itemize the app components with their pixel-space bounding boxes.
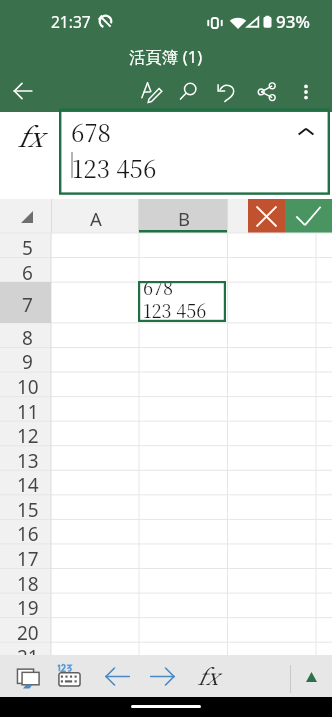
button[interactable]: A <box>52 199 138 233</box>
staticText: fx <box>197 660 218 692</box>
button[interactable]: Next cell <box>144 658 180 694</box>
button[interactable]: 18 <box>0 569 51 594</box>
staticText: B <box>178 206 191 231</box>
staticText: 15 <box>17 497 39 522</box>
button[interactable]: 5 <box>0 233 51 258</box>
button[interactable]: 7 <box>0 282 51 323</box>
staticText: 17 <box>17 546 39 571</box>
staticText: 7 <box>22 292 33 318</box>
button[interactable]: 16 <box>0 519 51 544</box>
button[interactable]: Back <box>3 71 43 110</box>
button[interactable]: Select all <box>0 199 51 233</box>
button[interactable]: 12 <box>0 421 51 446</box>
staticText: 18 <box>17 571 39 596</box>
button[interactable]: Sheets <box>10 658 46 694</box>
button[interactable]: Undo <box>206 72 246 111</box>
staticText: 9 <box>22 349 33 374</box>
button[interactable]: More options <box>286 72 326 111</box>
button[interactable]: 6 <box>0 258 51 283</box>
button[interactable]: 15 <box>0 495 51 520</box>
staticText: 123 456 <box>72 150 157 184</box>
button[interactable]: 20 <box>0 618 51 643</box>
button[interactable]: B <box>139 199 227 233</box>
button[interactable]: 19 <box>0 593 51 618</box>
staticText: 10 <box>17 374 39 399</box>
staticText: 14 <box>17 472 39 497</box>
staticText: 93% <box>276 10 310 33</box>
staticText: 13 <box>17 448 39 473</box>
staticText: 6 <box>22 260 33 285</box>
staticText: 678 <box>143 281 173 300</box>
button[interactable]: Search <box>168 72 208 111</box>
button[interactable]: 14 <box>0 470 51 495</box>
button[interactable]: Share <box>246 72 286 111</box>
staticText: 5 <box>22 235 33 260</box>
button[interactable]: Function <box>0 112 59 196</box>
button[interactable]: Expand <box>294 660 329 695</box>
staticText: 21 <box>17 644 39 669</box>
staticText: fx <box>17 116 43 155</box>
button[interactable]: 10 <box>0 372 51 397</box>
staticText: 678 <box>71 114 111 148</box>
staticText: 11 <box>17 399 39 424</box>
button[interactable]: Enter <box>285 199 332 233</box>
button[interactable]: 13 <box>0 446 51 471</box>
staticText: 8 <box>22 325 33 350</box>
staticText: 16 <box>17 521 39 546</box>
staticText: 12 <box>17 423 39 448</box>
button[interactable]: Numeric keyboard <box>51 658 87 694</box>
button[interactable]: 8 <box>0 323 51 348</box>
button[interactable]: 678 <box>138 281 226 322</box>
button[interactable]: 9 <box>0 347 51 372</box>
staticText: 20 <box>17 620 39 645</box>
button[interactable]: Formula <box>189 658 225 694</box>
button[interactable]: Collapse formula bar <box>291 117 321 147</box>
button[interactable]: 11 <box>0 397 51 422</box>
button[interactable]: 17 <box>0 544 51 569</box>
button[interactable]: Edit with pen <box>131 72 171 111</box>
button[interactable]: Previous cell <box>99 658 135 694</box>
staticText: 活頁簿 (1) <box>129 45 203 68</box>
staticText: 19 <box>17 595 39 620</box>
staticText: 21:37 <box>51 11 91 32</box>
button[interactable]: 21 <box>0 642 51 667</box>
staticText: 123 456 <box>143 297 207 322</box>
staticText: A <box>90 206 102 231</box>
button[interactable]: Cancel <box>248 199 285 233</box>
